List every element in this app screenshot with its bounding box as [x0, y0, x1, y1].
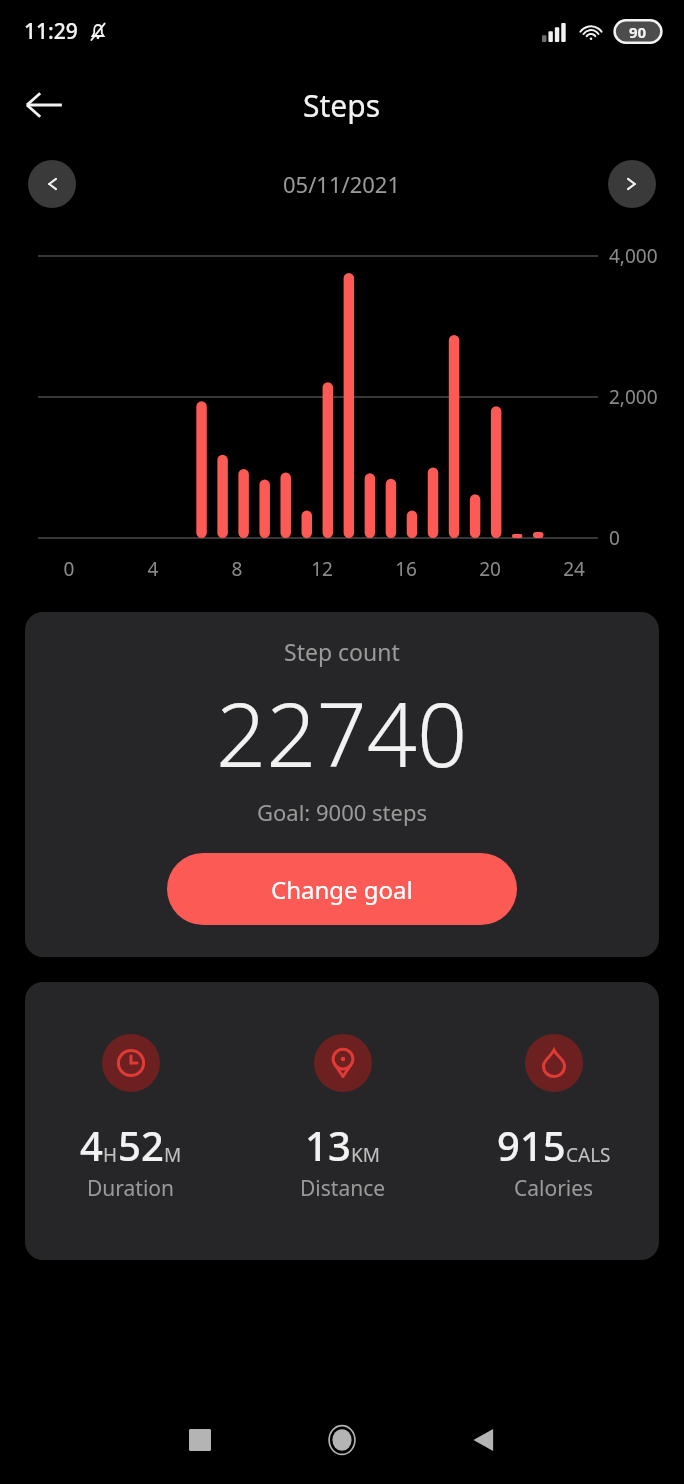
button[interactable]: Step count: [25, 612, 659, 957]
staticText: 22740: [216, 673, 468, 793]
staticText: KM: [351, 1142, 380, 1168]
button[interactable]: 13: [237, 982, 448, 1203]
staticText: 4: [133, 556, 173, 582]
staticText: 12: [302, 556, 342, 582]
staticText: 2,000: [609, 384, 658, 410]
staticText: 90: [629, 22, 647, 42]
staticText: 0: [609, 525, 620, 551]
staticText: 20: [470, 556, 510, 582]
staticText: M: [164, 1142, 182, 1168]
staticText: 4: [80, 1118, 103, 1172]
button[interactable]: 4: [25, 982, 237, 1203]
staticText: Duration: [87, 1174, 175, 1203]
staticText: 24: [554, 556, 594, 582]
button[interactable]: Recent apps: [166, 1406, 234, 1474]
staticText: 16: [386, 556, 426, 582]
button[interactable]: Next day: [608, 160, 656, 208]
staticText: H: [103, 1142, 118, 1168]
staticText: 8: [217, 556, 257, 582]
staticText: Steps: [303, 85, 381, 126]
staticText: 915: [497, 1118, 566, 1172]
button[interactable]: Back: [450, 1406, 518, 1474]
button[interactable]: 915: [448, 982, 659, 1203]
staticText: 13: [305, 1118, 351, 1172]
staticText: Change goal: [271, 873, 413, 906]
staticText: Goal: 9000 steps: [257, 797, 427, 827]
staticText: 11:29: [24, 17, 78, 46]
button[interactable]: Previous day: [28, 160, 76, 208]
button[interactable]: Change goal: [167, 853, 517, 925]
button[interactable]: Home: [308, 1406, 376, 1474]
button[interactable]: Back: [18, 79, 70, 131]
staticText: 0: [49, 556, 89, 582]
staticText: 05/11/2021: [283, 169, 401, 199]
staticText: Calories: [514, 1174, 594, 1203]
staticText: Step count: [284, 636, 400, 667]
staticText: CALS: [566, 1142, 611, 1168]
staticText: 52: [118, 1118, 164, 1172]
staticText: Distance: [300, 1174, 386, 1203]
staticText: 4,000: [609, 243, 658, 269]
